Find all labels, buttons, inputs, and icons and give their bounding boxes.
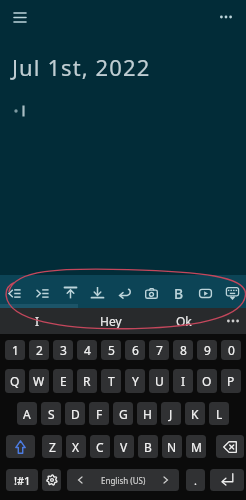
button[interactable]: U xyxy=(149,369,169,393)
staticText: Y xyxy=(132,373,139,389)
button[interactable]: 7 xyxy=(149,340,169,360)
button[interactable]: Keyboard xyxy=(219,279,246,308)
button[interactable]: D xyxy=(65,402,85,425)
staticText: Z xyxy=(49,439,56,455)
staticText: 3 xyxy=(60,342,67,358)
button[interactable]: N xyxy=(162,435,182,458)
button[interactable]: Z xyxy=(42,435,62,458)
button[interactable]: S xyxy=(41,402,61,425)
button[interactable]: Settings xyxy=(42,469,61,491)
button[interactable]: 6 xyxy=(125,340,145,360)
staticText: M xyxy=(191,439,202,455)
staticText: R xyxy=(83,373,91,389)
button[interactable]: Hey xyxy=(74,308,147,334)
staticText: C xyxy=(96,439,104,455)
button[interactable]: Enter xyxy=(210,469,244,491)
staticText: V xyxy=(120,439,128,455)
staticText: English (US) xyxy=(101,475,146,486)
staticText: !#1 xyxy=(14,473,31,488)
staticText: N xyxy=(167,439,177,455)
button[interactable]: I xyxy=(173,369,193,393)
button[interactable]: 9 xyxy=(197,340,217,360)
button[interactable]: O xyxy=(197,369,217,393)
staticText: 9 xyxy=(204,342,211,358)
staticText: 1 xyxy=(12,342,19,358)
button[interactable]: K xyxy=(185,402,205,425)
button[interactable]: Indent xyxy=(28,279,56,308)
staticText: P xyxy=(227,373,235,389)
button[interactable]: R xyxy=(77,369,97,393)
button[interactable]: Shift xyxy=(6,435,35,458)
button[interactable]: L xyxy=(209,402,229,425)
staticText: 5 xyxy=(108,342,115,358)
button[interactable]: More options xyxy=(212,3,240,31)
staticText: 4 xyxy=(84,342,91,358)
button[interactable]: Move to bottom xyxy=(84,279,111,308)
staticText: J xyxy=(169,406,173,422)
staticText: . xyxy=(194,473,197,488)
staticText: U xyxy=(155,373,164,389)
button[interactable]: English (US) xyxy=(67,469,179,491)
button[interactable]: Move to top xyxy=(56,279,84,308)
button[interactable]: 4 xyxy=(77,340,97,360)
staticText: A xyxy=(23,406,31,422)
button[interactable]: W xyxy=(29,369,49,393)
button[interactable]: Ok xyxy=(147,308,220,334)
staticText: L xyxy=(216,406,223,422)
button[interactable]: H xyxy=(137,402,157,425)
staticText: H xyxy=(143,406,152,422)
button[interactable]: Video xyxy=(192,279,219,308)
button[interactable]: 5 xyxy=(101,340,121,360)
staticText: I xyxy=(35,313,40,329)
button[interactable]: G xyxy=(113,402,133,425)
button[interactable]: 8 xyxy=(173,340,193,360)
button[interactable]: Q xyxy=(5,369,25,393)
button[interactable]: F xyxy=(89,402,109,425)
staticText: T xyxy=(108,373,115,389)
staticText: 2 xyxy=(36,342,43,358)
button[interactable]: Camera xyxy=(138,279,165,308)
staticText: 6 xyxy=(132,342,139,358)
staticText: W xyxy=(33,373,45,389)
button[interactable]: T xyxy=(101,369,121,393)
staticText: K xyxy=(191,406,199,422)
staticText: D xyxy=(71,406,80,422)
button[interactable]: A xyxy=(17,402,37,425)
button[interactable]: V xyxy=(114,435,134,458)
button[interactable]: Menu xyxy=(5,3,34,32)
staticText: Hey xyxy=(100,313,122,329)
button[interactable]: I xyxy=(0,308,74,334)
button[interactable]: . xyxy=(186,469,205,491)
button[interactable]: !#1 xyxy=(6,469,38,491)
button[interactable]: P xyxy=(221,369,241,393)
staticText: 8 xyxy=(180,342,187,358)
button[interactable]: X xyxy=(66,435,86,458)
button[interactable]: 0 xyxy=(221,340,241,360)
button[interactable]: B xyxy=(138,435,158,458)
staticText: G xyxy=(119,406,128,422)
staticText: 0 xyxy=(228,342,235,358)
button[interactable]: B xyxy=(165,279,192,308)
staticText: F xyxy=(96,406,103,422)
staticText: I xyxy=(181,373,186,389)
button[interactable]: Backspace xyxy=(216,435,244,458)
button[interactable]: C xyxy=(90,435,110,458)
button[interactable]: M xyxy=(186,435,206,458)
staticText: Jul 1st, 2022 xyxy=(12,52,151,82)
button[interactable]: 1 xyxy=(5,340,25,360)
staticText: S xyxy=(48,406,55,422)
staticText: Q xyxy=(10,373,20,389)
button[interactable]: 2 xyxy=(29,340,49,360)
button[interactable]: 3 xyxy=(53,340,73,360)
staticText: O xyxy=(202,373,212,389)
button[interactable]: Undo xyxy=(111,279,138,308)
staticText: B xyxy=(174,284,184,303)
staticText: B xyxy=(144,439,152,455)
button[interactable]: More suggestions xyxy=(220,308,246,334)
button[interactable]: J xyxy=(161,402,181,425)
button[interactable]: Bullet list xyxy=(0,279,28,308)
staticText: E xyxy=(60,373,67,389)
button[interactable]: E xyxy=(53,369,73,393)
button[interactable]: Y xyxy=(125,369,145,393)
staticText: 7 xyxy=(156,342,163,358)
